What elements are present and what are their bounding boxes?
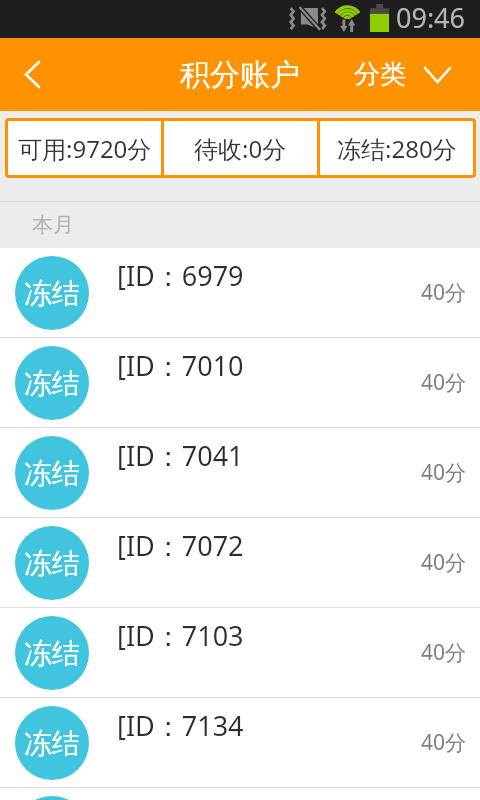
staticText: 冻结 bbox=[24, 276, 80, 311]
button[interactable]: 冻结 bbox=[0, 428, 480, 517]
staticText: [ID：6979 bbox=[117, 257, 244, 294]
staticText: [ID：7103 bbox=[117, 617, 244, 654]
staticText: 待收:0分 bbox=[194, 132, 287, 165]
staticText: 积分账户 bbox=[180, 56, 300, 94]
button[interactable]: 冻结 bbox=[0, 698, 480, 787]
button[interactable]: 冻结 bbox=[0, 338, 480, 427]
staticText: 冻结:280分 bbox=[337, 132, 457, 165]
button[interactable]: 冻结 bbox=[0, 608, 480, 697]
button[interactable]: Back bbox=[0, 38, 64, 111]
button[interactable]: 冻结:280分 bbox=[320, 121, 473, 175]
staticText: [ID：7010 bbox=[117, 347, 244, 384]
staticText: 冻结 bbox=[24, 456, 80, 491]
staticText: [ID：7072 bbox=[117, 527, 244, 564]
staticText: 40分 bbox=[421, 638, 467, 667]
button[interactable]: 分类 bbox=[354, 38, 450, 111]
staticText: 冻结 bbox=[24, 546, 80, 581]
button[interactable]: 冻结 bbox=[0, 518, 480, 607]
staticText: 冻结 bbox=[24, 366, 80, 401]
button[interactable]: 冻结 bbox=[0, 248, 480, 337]
button[interactable]: 冻结 bbox=[0, 788, 480, 800]
staticText: 分类 bbox=[354, 58, 406, 91]
staticText: 40分 bbox=[421, 548, 467, 577]
button[interactable]: 可用:9720分 bbox=[8, 121, 161, 175]
staticText: [ID：7041 bbox=[117, 437, 244, 474]
staticText: 09:46 bbox=[396, 0, 466, 36]
staticText: 40分 bbox=[421, 368, 467, 397]
staticText: 冻结 bbox=[24, 636, 80, 671]
staticText: 40分 bbox=[421, 278, 467, 307]
staticText: 冻结 bbox=[24, 726, 80, 761]
button[interactable]: 待收:0分 bbox=[164, 121, 317, 175]
staticText: 可用:9720分 bbox=[18, 132, 152, 165]
staticText: 40分 bbox=[421, 728, 467, 757]
staticText: 本月 bbox=[32, 212, 74, 238]
staticText: 40分 bbox=[421, 458, 467, 487]
staticText: [ID：7134 bbox=[117, 707, 244, 744]
